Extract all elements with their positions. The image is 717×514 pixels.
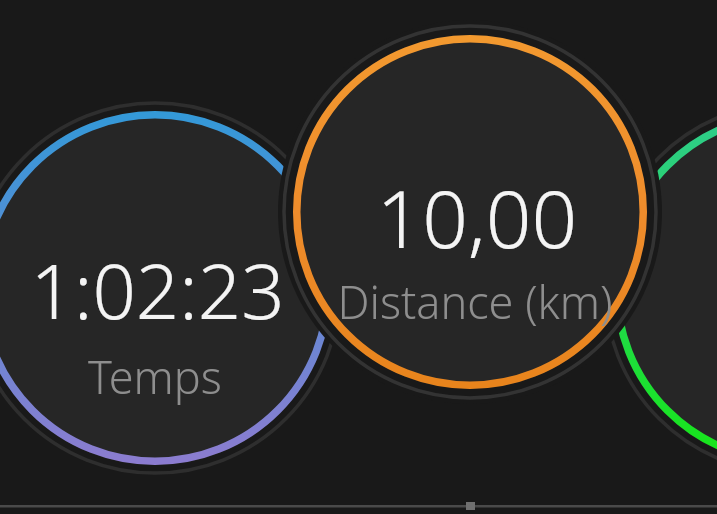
button[interactable]: Workout metrics carousel [0,0,717,514]
